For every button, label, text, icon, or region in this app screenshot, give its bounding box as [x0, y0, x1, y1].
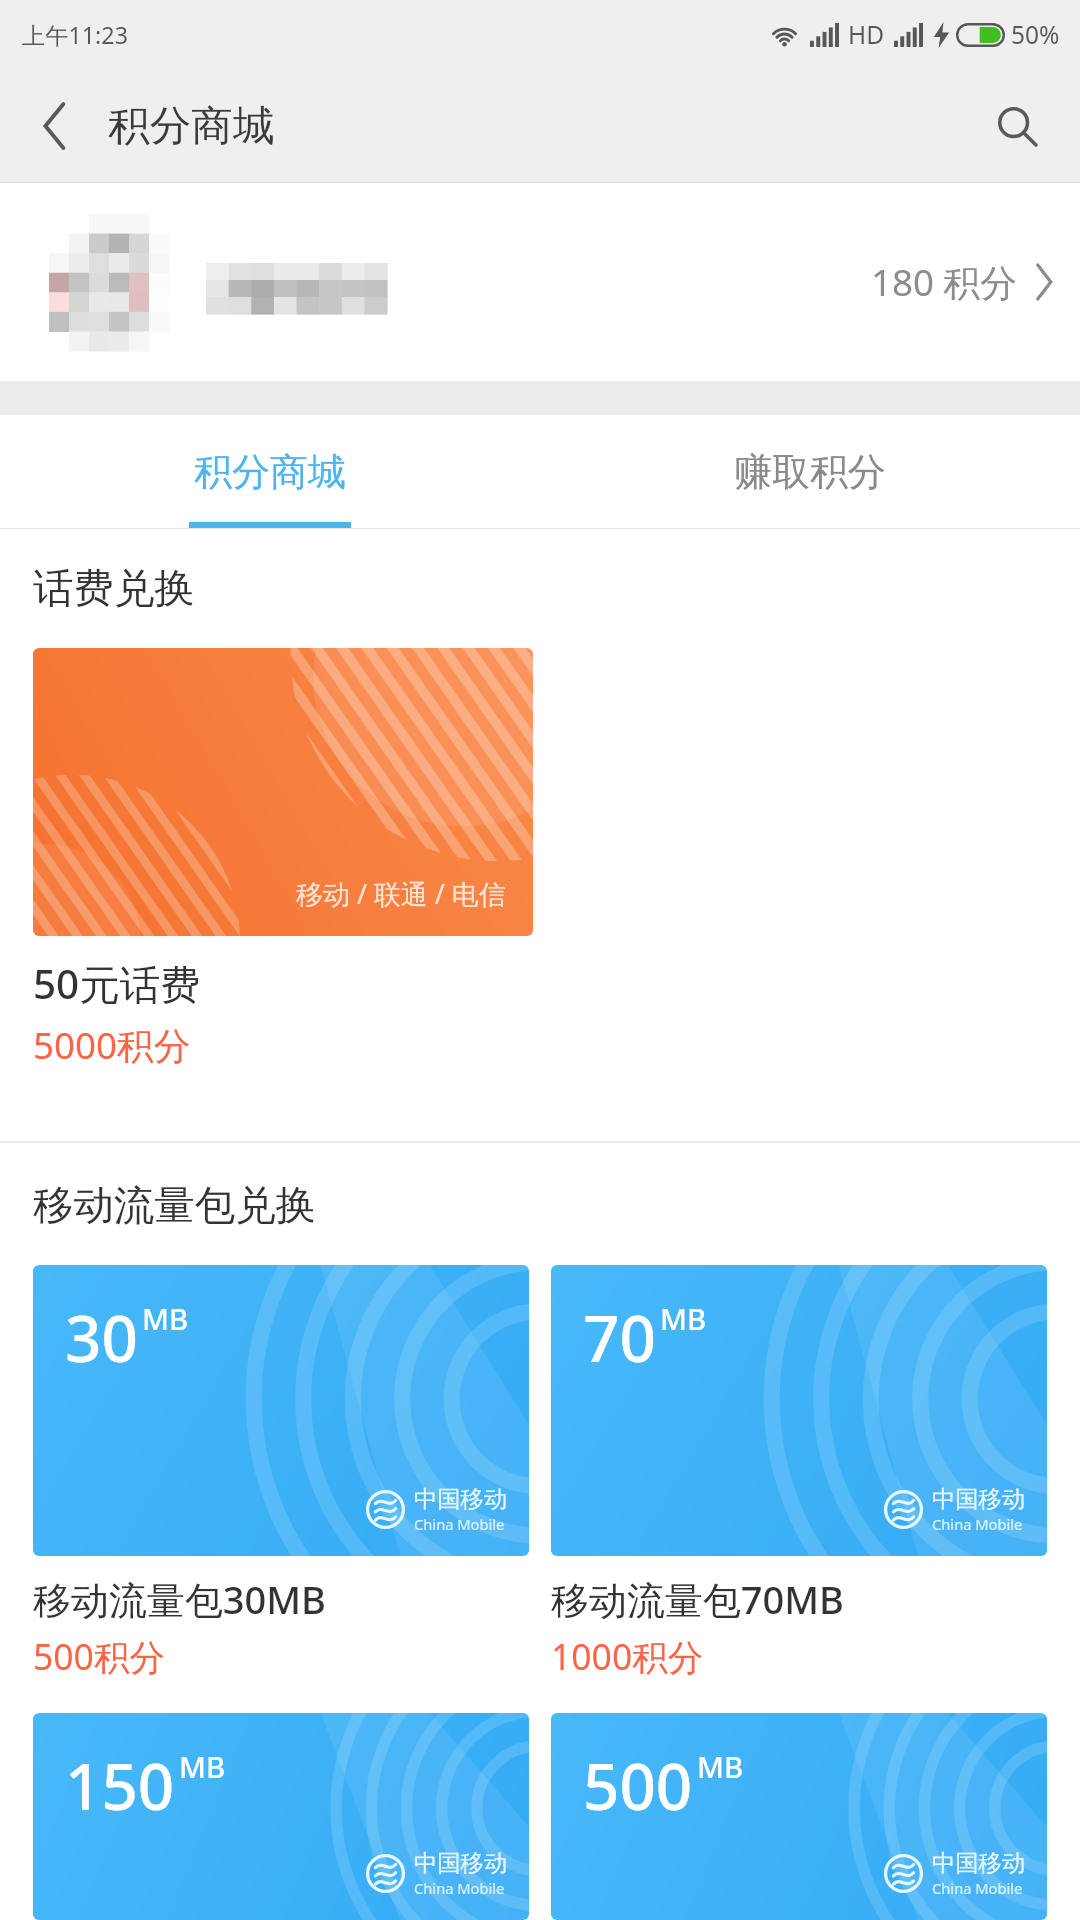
button[interactable]: Back	[17, 88, 93, 164]
staticText: HD	[848, 18, 885, 51]
staticText: MB	[179, 1747, 226, 1787]
staticText: 移动流量包70MB	[551, 1573, 844, 1625]
staticText: 500	[583, 1742, 693, 1829]
staticText: 50%	[1011, 18, 1060, 51]
staticText: China Mobile	[932, 1514, 1023, 1534]
staticText: 50元话费	[33, 956, 201, 1011]
staticText: 180 积分	[871, 257, 1018, 307]
staticText: 1000积分	[551, 1632, 704, 1681]
staticText: MB	[660, 1299, 707, 1339]
staticText: 移动 / 联通 / 电信	[296, 875, 506, 912]
staticText: 中国移动	[932, 1849, 1025, 1878]
staticText: 中国移动	[932, 1485, 1025, 1514]
staticText: 中国移动	[414, 1849, 507, 1878]
staticText: 话费兑换	[33, 563, 195, 614]
staticText: 30	[65, 1294, 138, 1381]
button[interactable]: 赚取积分	[540, 415, 1080, 528]
staticText: 中国移动	[414, 1485, 507, 1514]
staticText: 赚取积分	[734, 448, 886, 496]
button[interactable]: 150	[33, 1713, 529, 1920]
button[interactable]: 积分商城	[0, 415, 540, 528]
staticText: MB	[697, 1747, 744, 1787]
button[interactable]: 180 积分	[0, 183, 1080, 381]
button[interactable]: 30	[33, 1265, 529, 1681]
staticText: China Mobile	[414, 1878, 505, 1898]
staticText: 500积分	[33, 1632, 165, 1681]
staticText: China Mobile	[932, 1878, 1023, 1898]
button[interactable]: 500	[551, 1713, 1047, 1920]
staticText: 上午11:23	[22, 19, 128, 51]
staticText: 积分商城	[108, 100, 275, 152]
button[interactable]: 70	[551, 1265, 1047, 1681]
staticText: 积分商城	[194, 448, 346, 496]
staticText: 移动流量包兑换	[33, 1180, 316, 1231]
staticText: 移动流量包30MB	[33, 1573, 326, 1625]
staticText: China Mobile	[414, 1514, 505, 1534]
staticText: 5000积分	[33, 1020, 191, 1070]
button[interactable]: 移动 / 联通 / 电信	[33, 648, 533, 1070]
staticText: 70	[583, 1294, 656, 1381]
staticText: MB	[142, 1299, 189, 1339]
staticText: 150	[65, 1742, 175, 1829]
button[interactable]: Search	[978, 87, 1056, 165]
